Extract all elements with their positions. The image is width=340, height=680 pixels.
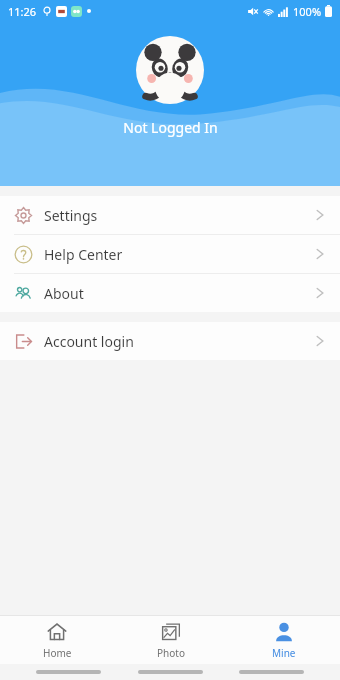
button[interactable]: Photo [114,616,227,664]
staticText: Help Center [44,245,123,264]
staticText: 100% [293,4,322,19]
button[interactable]: About [0,274,340,312]
staticText: About [44,284,84,303]
staticText: Home [43,646,72,660]
staticText: 11:26 [8,4,37,19]
button[interactable]: Avatar [136,36,204,104]
staticText: Photo [157,646,185,660]
staticText: Not Logged In [123,118,218,137]
button[interactable]: Home [0,616,114,664]
staticText: Settings [44,206,98,225]
button[interactable]: Account login [0,322,340,360]
button[interactable]: Mine [227,616,340,664]
button[interactable]: Settings [0,196,340,234]
staticText: Mine [272,646,296,660]
staticText: Account login [44,332,134,351]
button[interactable]: Help Center [0,235,340,273]
